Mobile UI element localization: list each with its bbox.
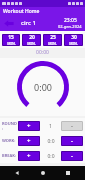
staticText: BREAK: <box>2 153 18 158</box>
staticText: 0:00 <box>34 81 52 93</box>
button[interactable]: Increase BREAK: <box>18 151 40 161</box>
staticText: ROUND: <box>2 121 18 131</box>
staticText: 0:0 <box>47 153 55 160</box>
staticText: 30 <box>71 34 77 41</box>
button[interactable]: 15 <box>2 34 20 46</box>
button[interactable]: Home <box>34 166 52 180</box>
staticText: MIN. <box>69 41 78 46</box>
staticText: 00:00 <box>0 49 85 56</box>
staticText: 0:0 <box>47 138 55 145</box>
staticText: MIN. <box>48 41 57 46</box>
button[interactable]: Recent apps <box>59 166 77 180</box>
staticText: 1 <box>49 123 52 130</box>
staticText: circ 1 <box>21 19 36 27</box>
button[interactable]: Decrease WORK: <box>61 136 83 146</box>
staticText: MIN. <box>7 41 16 46</box>
staticText: 20 <box>29 34 35 41</box>
button[interactable]: Back <box>2 16 16 30</box>
staticText: 25 <box>50 34 56 41</box>
staticText: 23:05 <box>64 17 77 24</box>
staticText: MIN. <box>27 41 36 46</box>
staticText: 02-gen-2024 <box>58 24 82 29</box>
button[interactable]: Increase ROUND: <box>18 121 40 131</box>
staticText: WORK: <box>2 138 18 143</box>
button[interactable]: Decrease ROUND: <box>61 121 83 131</box>
button[interactable]: 30 <box>64 34 83 46</box>
staticText: + <box>27 152 31 160</box>
button[interactable]: Back <box>8 166 26 180</box>
staticText: - <box>71 122 73 130</box>
staticText: - <box>71 152 73 160</box>
staticText: + <box>27 122 31 130</box>
staticText: Workout Home <box>3 8 40 15</box>
button[interactable]: 25 <box>43 34 62 46</box>
staticText: + <box>27 137 31 145</box>
button[interactable]: 20 <box>22 34 41 46</box>
button[interactable]: Increase WORK: <box>18 136 40 146</box>
staticText: 15 <box>8 34 14 41</box>
button[interactable]: Decrease BREAK: <box>61 151 83 161</box>
staticText: - <box>71 137 73 145</box>
